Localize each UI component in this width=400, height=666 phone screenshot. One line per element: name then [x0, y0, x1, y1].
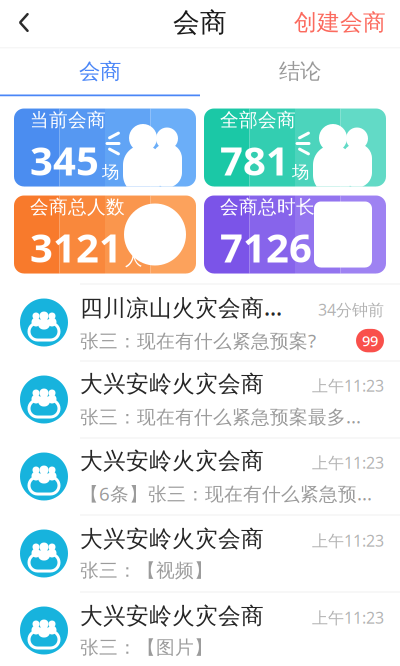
staticText: 结论	[279, 58, 321, 85]
staticText: 会商总人数	[30, 195, 125, 218]
staticText: 345	[30, 133, 99, 186]
staticText: 会商	[79, 58, 121, 85]
staticText: 【6条】张三：现在有什么紧急预案?	[80, 481, 374, 506]
staticText: 7126	[220, 220, 312, 273]
staticText: 大兴安岭火灾会商	[80, 602, 264, 630]
button[interactable]: 大兴安岭火灾会商	[0, 592, 400, 666]
staticText: 当前会商	[30, 108, 106, 131]
button[interactable]: 大兴安岭火灾会商	[0, 361, 400, 438]
staticText: 会商总时长	[220, 195, 315, 218]
staticText: 场	[102, 161, 119, 182]
staticText: 781	[220, 133, 289, 186]
staticText: 上午11:23	[312, 452, 384, 473]
staticText: 99	[362, 331, 378, 350]
button[interactable]: 会商	[0, 48, 200, 94]
staticText: 场	[292, 161, 309, 182]
button[interactable]: Back	[0, 0, 48, 44]
staticText: 34分钟前	[318, 299, 384, 320]
staticText: 上午11:23	[312, 530, 384, 551]
button[interactable]: 会商总人数	[14, 195, 196, 273]
staticText: 张三：【视频】	[80, 559, 213, 582]
button[interactable]: 大兴安岭火灾会商	[0, 438, 400, 515]
button[interactable]: 四川凉山火灾会商最多文字文字	[0, 284, 400, 361]
staticText: 会商	[173, 6, 227, 39]
staticText: 人	[125, 248, 142, 269]
button[interactable]: 当前会商	[14, 108, 196, 186]
staticText: 时	[315, 248, 332, 269]
staticText: 上午11:23	[312, 607, 384, 628]
staticText: 张三：现在有什么紧急预案?	[80, 328, 316, 353]
button[interactable]: 全部会商	[204, 108, 386, 186]
staticText: 全部会商	[220, 108, 296, 131]
staticText: 上午11:23	[312, 375, 384, 396]
button[interactable]: 会商总时长	[204, 195, 386, 273]
button[interactable]: 结论	[200, 48, 400, 94]
staticText: 张三：现在有什么紧急预案最多文字最多…	[80, 404, 374, 429]
button[interactable]: 大兴安岭火灾会商	[0, 515, 400, 592]
staticText: 大兴安岭火灾会商	[80, 370, 264, 398]
staticText: 大兴安岭火灾会商	[80, 447, 264, 475]
staticText: 四川凉山火灾会商最多文字文字	[80, 292, 302, 322]
staticText: 3121	[30, 220, 122, 273]
staticText: 大兴安岭火灾会商	[80, 525, 264, 553]
staticText: 创建会商	[294, 9, 386, 36]
button[interactable]: 创建会商	[280, 0, 400, 44]
staticText: 张三：【图片】	[80, 636, 213, 659]
